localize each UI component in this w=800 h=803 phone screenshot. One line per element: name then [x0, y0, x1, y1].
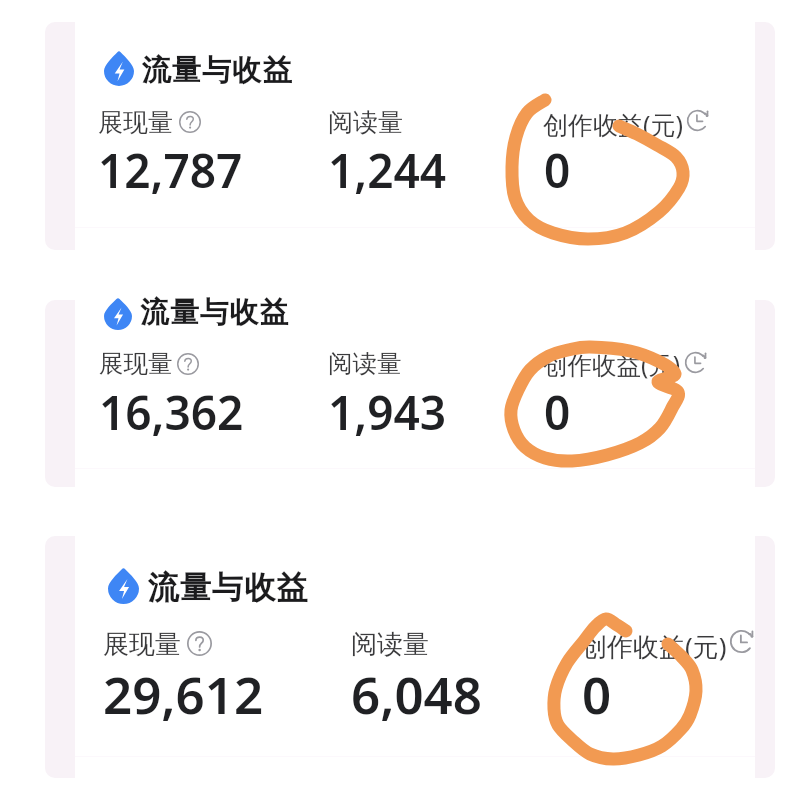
- staticText: 29,612: [103, 659, 264, 728]
- staticText: 12,787: [98, 139, 243, 202]
- other: History: [729, 629, 754, 654]
- button[interactable]: [45, 300, 775, 487]
- staticText: 阅读量: [328, 348, 402, 379]
- staticText: 1,943: [328, 381, 447, 444]
- staticText: 流量与收益: [140, 294, 290, 330]
- staticText: 展现量: [98, 107, 173, 138]
- other: History: [684, 351, 707, 374]
- other: Help: [179, 111, 201, 133]
- button[interactable]: [45, 22, 775, 250]
- staticText: 创作收益(元): [543, 348, 681, 381]
- staticText: 创作收益(元): [543, 107, 684, 141]
- staticText: 16,362: [99, 381, 244, 444]
- staticText: 1,244: [328, 139, 447, 202]
- staticText: 流量与收益: [147, 568, 308, 607]
- other: Help: [177, 353, 199, 375]
- button[interactable]: [45, 536, 775, 778]
- staticText: 阅读量: [328, 107, 403, 138]
- staticText: 0: [544, 139, 571, 202]
- staticText: 展现量: [103, 628, 181, 661]
- staticText: 阅读量: [351, 628, 429, 661]
- other: History: [686, 109, 709, 132]
- staticText: 0: [544, 381, 571, 444]
- staticText: 创作收益(元): [581, 628, 727, 664]
- staticText: 展现量: [99, 348, 173, 379]
- other: Help: [187, 631, 212, 656]
- staticText: 0: [582, 659, 612, 728]
- staticText: 流量与收益: [141, 52, 292, 89]
- staticText: 6,048: [351, 659, 482, 728]
